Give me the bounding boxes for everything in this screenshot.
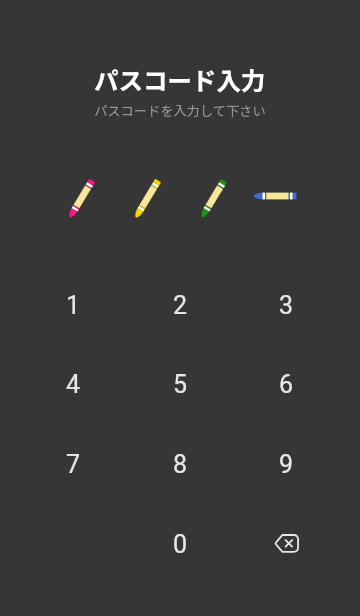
button[interactable]: 8 xyxy=(127,424,234,504)
button[interactable]: 1 xyxy=(20,265,127,345)
staticText: 8 xyxy=(173,450,188,479)
button[interactable]: 0 xyxy=(127,504,234,584)
staticText: 5 xyxy=(173,370,188,399)
staticText: 0 xyxy=(173,530,188,559)
button[interactable]: 5 xyxy=(127,344,234,424)
staticText: 9 xyxy=(279,450,294,479)
staticText: パスコードを入力して下さい xyxy=(94,101,266,120)
staticText: 2 xyxy=(173,291,188,320)
staticText: 7 xyxy=(66,450,81,479)
button[interactable]: 7 xyxy=(20,424,127,504)
button[interactable]: 9 xyxy=(233,424,340,504)
staticText: 1 xyxy=(66,291,81,320)
button[interactable]: 3 xyxy=(233,265,340,345)
staticText: 3 xyxy=(279,291,294,320)
button[interactable]: 6 xyxy=(233,344,340,424)
button[interactable]: Delete xyxy=(233,504,340,584)
staticText: 6 xyxy=(279,370,294,399)
button[interactable]: 4 xyxy=(20,344,127,424)
button[interactable]: 2 xyxy=(127,265,234,345)
staticText: パスコード入力 xyxy=(94,62,266,97)
staticText: 4 xyxy=(66,370,81,399)
